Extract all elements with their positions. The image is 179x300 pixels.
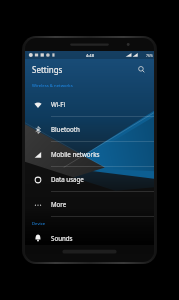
- staticText: 4:48: [86, 53, 94, 58]
- button[interactable]: Data usage: [25, 167, 154, 192]
- staticText: Wireless & networks: [32, 83, 73, 89]
- staticText: Settings: [32, 64, 135, 75]
- staticText: More: [51, 200, 67, 208]
- button[interactable]: More: [25, 192, 154, 217]
- staticText: 76%: [146, 53, 153, 58]
- button[interactable]: Mobile networks: [25, 142, 154, 167]
- staticText: Bluetooth: [51, 125, 80, 133]
- staticText: Data usage: [51, 175, 84, 183]
- button[interactable]: Search: [135, 63, 147, 75]
- button[interactable]: Bluetooth: [25, 117, 154, 142]
- staticText: Sounds: [51, 234, 73, 242]
- staticText: Wi-Fi: [51, 100, 66, 108]
- button[interactable]: Wi-Fi: [25, 92, 154, 117]
- button[interactable]: Sounds: [25, 230, 154, 245]
- staticText: Mobile networks: [51, 150, 100, 158]
- staticText: Device: [32, 221, 46, 227]
